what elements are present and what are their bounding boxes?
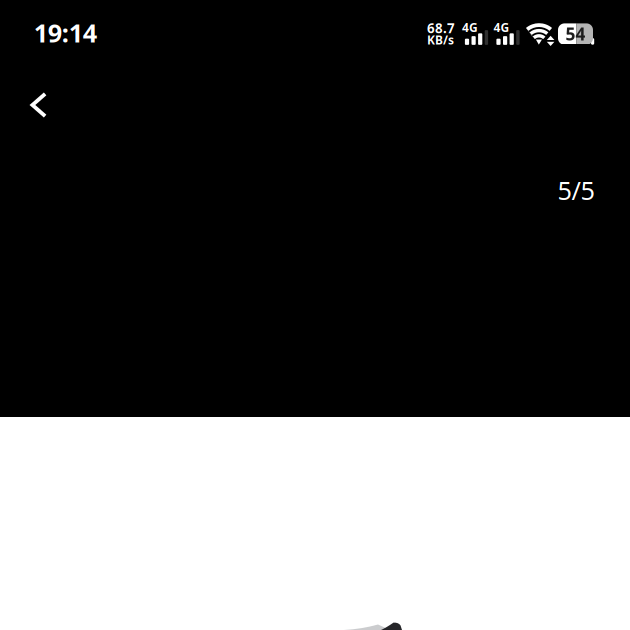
staticText: 5/5 [557,173,594,207]
button[interactable]: Back [0,75,71,136]
staticText: 68.7 [427,19,455,37]
staticText: 4G [462,19,478,35]
staticText: 54 [565,22,585,45]
staticText: 4G [494,19,510,35]
staticText: 19:14 [34,16,97,49]
staticText: KB/s [427,32,454,48]
